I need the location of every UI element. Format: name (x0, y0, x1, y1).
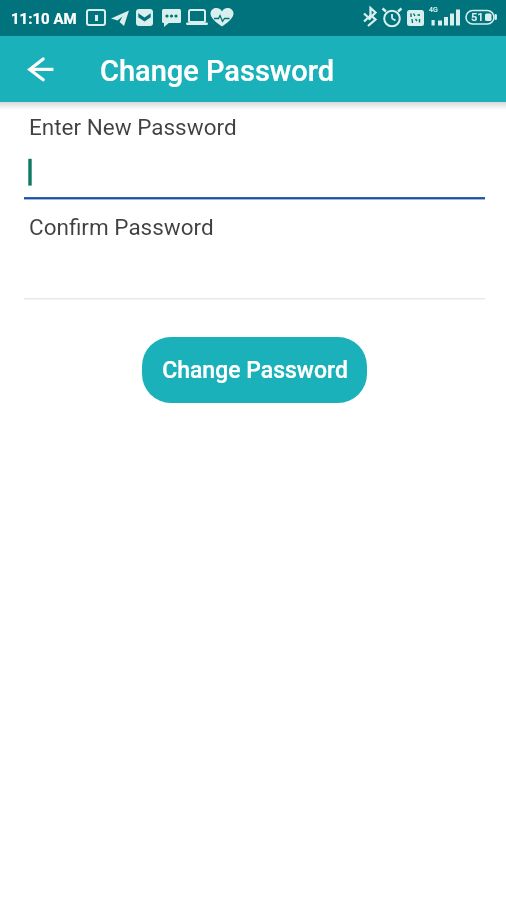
button[interactable]: Enter New Password (24, 106, 485, 200)
staticText: 4G (429, 6, 438, 14)
staticText: Enter New Password (29, 114, 237, 140)
staticText: Change Password (100, 54, 335, 88)
staticText: 51 (471, 11, 484, 24)
button[interactable]: Back (6, 36, 74, 102)
staticText: Confirm Password (29, 214, 214, 240)
button[interactable]: Change Password (142, 337, 367, 403)
button[interactable]: Confirm Password (24, 207, 485, 300)
staticText: Change Password (162, 357, 348, 384)
staticText: 11:10 AM (11, 10, 77, 28)
